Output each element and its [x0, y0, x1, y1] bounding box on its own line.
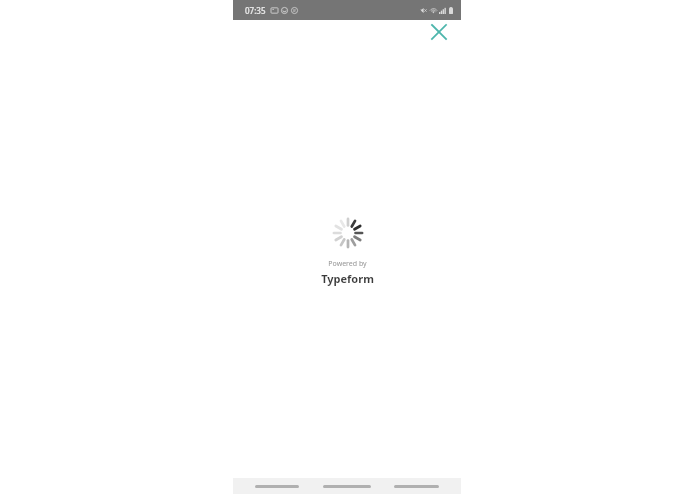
- staticText: 07:35: [245, 5, 266, 16]
- staticText: Typeform: [321, 271, 374, 286]
- button[interactable]: Recents: [394, 481, 439, 491]
- button[interactable]: Home: [323, 481, 371, 491]
- button[interactable]: Close: [421, 14, 457, 50]
- button[interactable]: Back: [255, 481, 299, 491]
- staticText: Powered by: [328, 259, 367, 269]
